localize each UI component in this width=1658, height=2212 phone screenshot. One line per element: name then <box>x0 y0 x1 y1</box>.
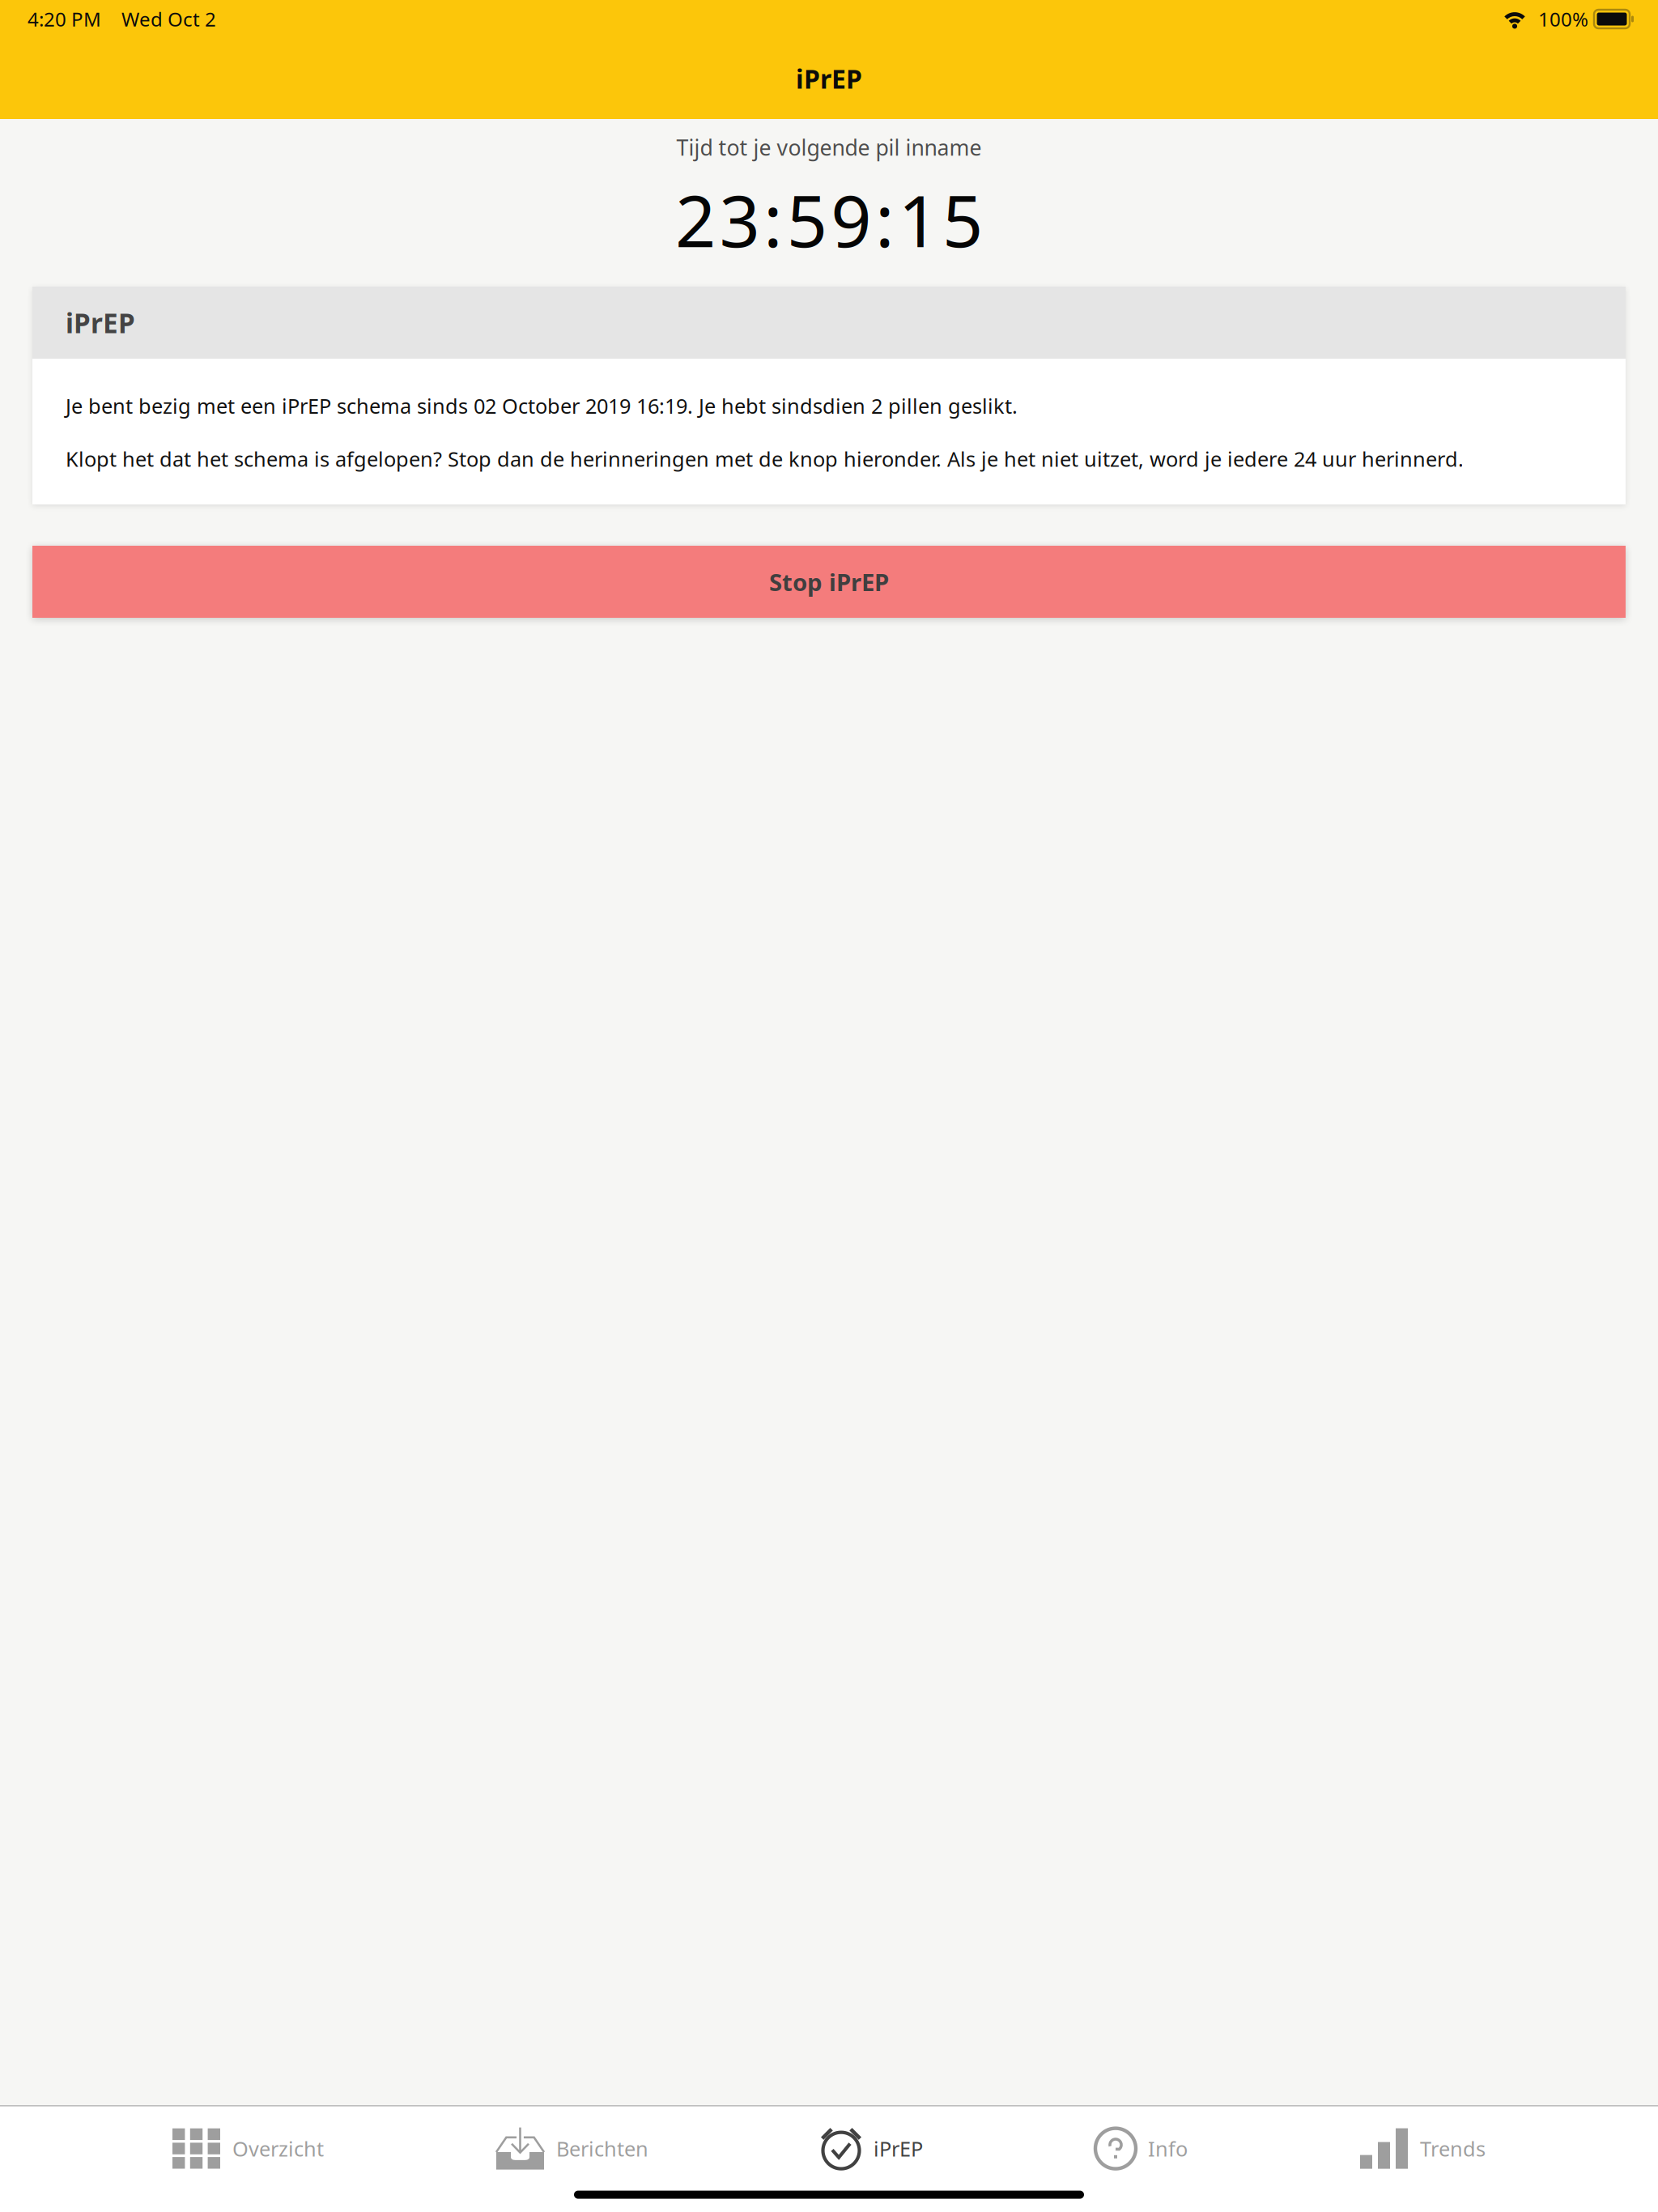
staticText: iPrEP <box>796 61 862 96</box>
staticText: Je bent bezig met een iPrEP schema sinds… <box>66 392 1018 420</box>
button[interactable]: Berichten <box>496 2127 648 2170</box>
staticText: iPrEP <box>874 2135 923 2162</box>
button[interactable]: Trends <box>1360 2128 1486 2169</box>
button[interactable]: Info <box>1095 2128 1188 2169</box>
staticText: Info <box>1148 2135 1188 2162</box>
button[interactable]: Overzicht <box>172 2128 324 2169</box>
staticText: Klopt het dat het schema is afgelopen? S… <box>66 445 1464 473</box>
staticText: Wed Oct 2 <box>121 6 216 32</box>
staticText: 4:20 PM <box>28 6 101 32</box>
staticText: 100% <box>1538 6 1588 32</box>
staticText: Stop iPrEP <box>769 566 889 598</box>
button[interactable]: Stop iPrEP <box>32 546 1626 618</box>
staticText: Berichten <box>556 2135 648 2162</box>
staticText: Tijd tot je volgende pil inname <box>676 133 982 162</box>
staticText: iPrEP <box>66 304 135 341</box>
staticText: 23:59:15 <box>675 171 983 268</box>
staticText: Overzicht <box>232 2135 324 2162</box>
button[interactable]: iPrEP <box>821 2128 923 2169</box>
staticText: Trends <box>1420 2135 1486 2162</box>
